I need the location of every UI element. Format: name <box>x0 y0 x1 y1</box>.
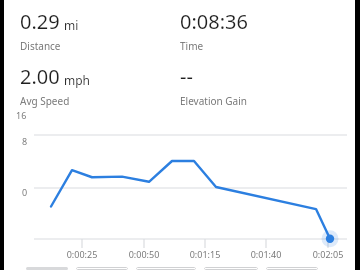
staticText: 0:00:50 <box>121 248 167 260</box>
staticText: mi <box>64 17 79 33</box>
staticText: 16 <box>16 109 27 121</box>
button[interactable]: Filter option 2 <box>76 267 128 270</box>
staticText: 0:08:36 <box>180 8 248 35</box>
staticText: 2.00 <box>20 63 60 90</box>
button[interactable]: 2.00 <box>20 63 180 108</box>
staticText: 0:02:05 <box>305 248 351 260</box>
staticText: 0:01:40 <box>243 248 289 260</box>
staticText: Elevation Gain <box>180 94 247 108</box>
staticText: Avg Speed <box>20 94 70 108</box>
staticText: -- <box>180 63 193 90</box>
button[interactable]: Filter option 1 <box>26 267 68 270</box>
button[interactable]: 0:08:36 <box>180 8 340 53</box>
button[interactable]: Filter option 4 <box>204 267 258 270</box>
staticText: 0:00:25 <box>59 248 105 260</box>
staticText: 0.29 <box>20 8 60 35</box>
staticText: Distance <box>20 39 61 53</box>
staticText: 0 <box>22 186 28 198</box>
button[interactable]: -- <box>180 63 340 108</box>
button[interactable]: Filter option 3 <box>136 267 196 270</box>
staticText: Time <box>180 39 204 53</box>
button[interactable]: 0.29 <box>20 8 180 53</box>
staticText: 0:01:15 <box>182 248 228 260</box>
button[interactable]: Filter option 5 <box>266 267 318 270</box>
staticText: mph <box>64 72 91 88</box>
staticText: 8 <box>22 135 28 147</box>
